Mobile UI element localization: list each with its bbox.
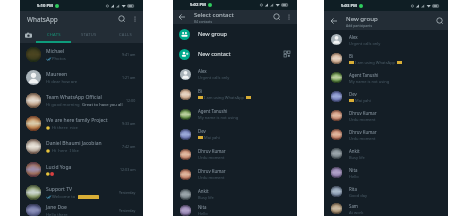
button[interactable]: Dhruv Kumar [173,164,297,184]
button[interactable]: Dev [173,124,297,144]
button[interactable]: Bi [324,49,448,68]
button[interactable]: Search [272,12,282,22]
button[interactable]: Jane Doe [20,204,143,216]
staticText: Hi here I like [52,148,79,154]
staticText: New contact [198,50,231,58]
button[interactable]: Sam [324,201,448,216]
staticText: Yesterday [119,190,136,195]
staticText: Photos [52,56,66,62]
staticText: Sam [349,203,358,209]
button[interactable]: Rita [324,182,448,201]
staticText: 7:42 am [122,144,136,149]
staticText: Welcome to [52,194,76,200]
staticText: 84 contacts [194,19,213,24]
staticText: 5:10 PM [37,3,54,9]
button[interactable]: Maureen [20,66,143,89]
staticText: Hi good morning [46,102,80,108]
staticText: Alex [198,68,207,74]
button[interactable]: CHATS [36,27,71,43]
button[interactable]: Back [329,16,339,26]
button[interactable]: Ankit [173,184,297,204]
staticText: 5:03 PM [341,3,358,9]
button[interactable]: Nita [173,204,297,216]
staticText: Support TV [46,186,72,193]
staticText: CALLS [119,32,132,38]
staticText: Lucid Yoga [46,164,72,171]
staticText: New group [198,30,228,38]
staticText: Good day [349,193,367,198]
staticText: Busy life [198,195,214,200]
staticText: 1:21 am [122,75,136,80]
staticText: 12:03 am [120,167,136,172]
button[interactable]: Bi [173,84,297,104]
button[interactable]: Camera [20,27,36,43]
button[interactable]: Alex [173,64,297,84]
button[interactable]: Scan QR code [283,50,291,58]
staticText: Hello [349,174,359,179]
button[interactable]: Search [117,14,127,24]
staticText: Jane Doe [46,204,67,211]
button[interactable]: Ankit [324,144,448,163]
staticText: Dhruv Kumar [198,148,226,154]
button[interactable]: Back [177,12,187,22]
staticText: Urdu moment [198,175,225,180]
button[interactable]: Alex [324,30,448,49]
staticText: Urgent calls only [349,41,381,46]
button[interactable]: Dhruv Kumar [324,125,448,144]
staticText: Dhruv Kumar [198,168,226,174]
staticText: Bi [349,53,353,59]
staticText: 12:00 [126,98,136,103]
button[interactable]: Daniel Bhaumi Jacobian [20,135,143,158]
button[interactable]: Michael [20,43,143,66]
button[interactable]: Dhruv Kumar [173,144,297,164]
staticText: STATUS [81,32,97,38]
staticText: My name is not using [198,115,239,120]
staticText: Hello [198,211,208,216]
button[interactable]: More options [130,14,140,24]
staticText: Mai yahi [204,135,220,140]
button[interactable]: More options [284,12,294,22]
staticText: New group [346,14,378,22]
staticText: Busy life [349,155,365,160]
button[interactable]: Search [435,16,445,26]
button[interactable]: New group [173,24,297,44]
staticText: Hello there [46,212,68,216]
staticText: WhatsApp [27,15,58,24]
staticText: Add participants [346,23,373,28]
staticText: Agent Tanushi [349,72,379,78]
staticText: Bi [198,88,202,94]
staticText: 5:02 PM [190,2,207,8]
staticText: My name is not using [349,79,390,84]
staticText: CHATS [47,32,61,38]
staticText: Great to have you all [82,102,123,108]
button[interactable]: Dev [324,87,448,106]
button[interactable]: Team WhatsApp Official [20,89,143,112]
button[interactable]: Agent Tanushi [173,104,297,124]
staticText: Dhruv Kumar [349,129,377,135]
button[interactable]: STATUS [71,27,107,43]
staticText: 9:33 am [122,121,136,126]
staticText: Daniel Bhaumi Jacobian [46,140,102,147]
staticText: Urgent calls only [198,75,230,80]
staticText: I am using WhatsApp [355,60,396,65]
staticText: Nita [198,204,207,210]
button[interactable]: CALLS [107,27,143,43]
staticText: Agent Tanushi [198,108,228,114]
button[interactable]: Agent Tanushi [324,68,448,87]
staticText: Select contact [194,10,234,18]
button[interactable]: Lucid Yoga [20,158,143,181]
staticText: Maureen [46,71,68,78]
button[interactable]: Dhruv Kumar [324,106,448,125]
button[interactable]: Support TV [20,181,143,204]
staticText: We are here family Project [46,117,108,124]
staticText: Alex [349,34,358,40]
button[interactable]: New contact [173,44,297,64]
staticText: Ankit [349,148,360,154]
staticText: Nita [349,167,358,173]
staticText: Dhruv Kumar [349,110,377,116]
button[interactable]: Nita [324,163,448,182]
button[interactable]: We are here family Project [20,112,143,135]
staticText: Urdu moment [349,117,376,122]
staticText: Team WhatsApp Official [46,94,102,101]
staticText: Ankit [198,188,209,194]
